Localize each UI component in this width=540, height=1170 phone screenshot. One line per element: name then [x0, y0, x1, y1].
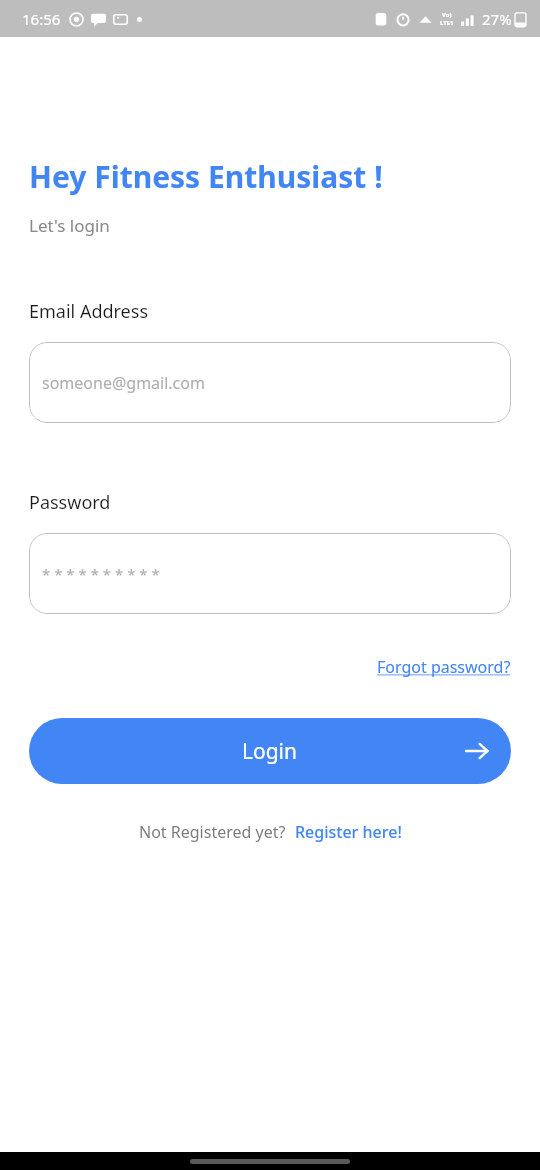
button[interactable]: Login — [29, 718, 511, 784]
staticText: Forgot password? — [377, 656, 511, 678]
staticText: Login — [242, 737, 298, 766]
staticText: someone@gmail.com — [42, 372, 205, 394]
button[interactable]: * * * * * * * * * * — [29, 533, 511, 614]
button[interactable]: Register here! — [295, 821, 402, 843]
staticText: Password — [29, 490, 111, 515]
staticText: Hey Fitness Enthusiast ! — [29, 156, 383, 197]
staticText: 27% — [482, 9, 512, 29]
button[interactable]: Forgot password? — [377, 656, 511, 678]
staticText: Let's login — [29, 214, 110, 237]
staticText: 16:56 — [22, 9, 61, 29]
staticText: Vo) — [442, 11, 452, 19]
button[interactable]: someone@gmail.com — [29, 342, 511, 423]
staticText: Email Address — [29, 299, 149, 324]
staticText: * * * * * * * * * * — [42, 564, 160, 584]
staticText: Not Registered yet? — [139, 821, 286, 843]
other: Home gesture bar — [190, 1159, 350, 1164]
staticText: Register here! — [295, 821, 402, 843]
staticText: LTE1 — [440, 19, 454, 27]
